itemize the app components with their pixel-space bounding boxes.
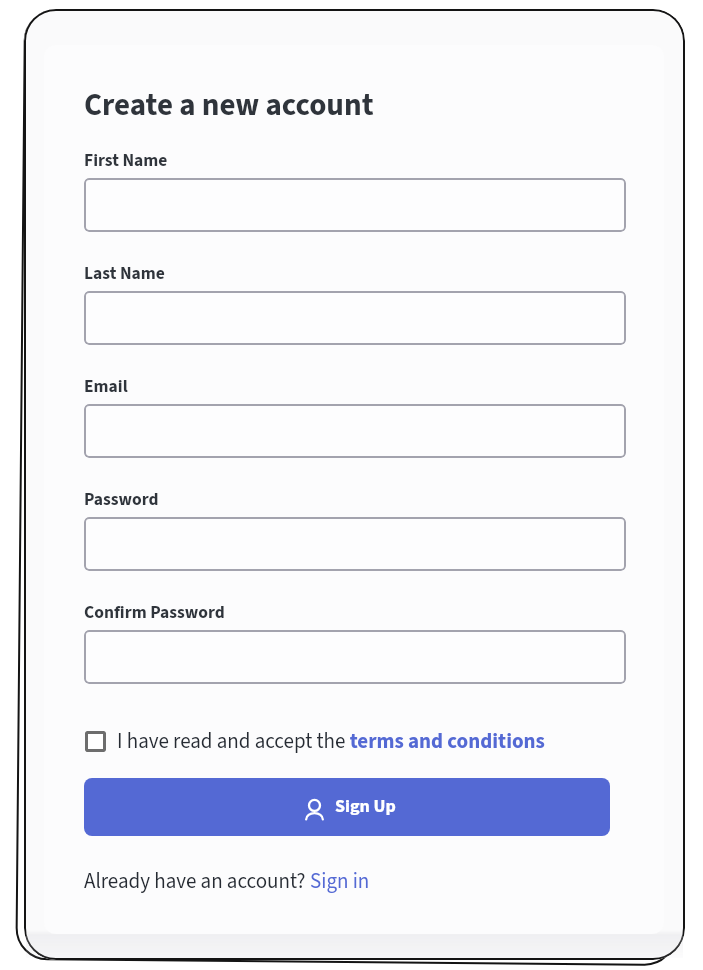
button[interactable] [84, 291, 626, 345]
staticText: First Name [84, 148, 168, 173]
staticText: I have read and accept the terms and con… [117, 726, 545, 756]
staticText: Create a new account [84, 83, 374, 127]
staticText: Password [84, 487, 159, 512]
button[interactable] [84, 630, 626, 684]
button[interactable] [84, 517, 626, 571]
button[interactable]: Sign in [310, 866, 370, 896]
staticText: Confirm Password [84, 600, 225, 625]
staticText: Sign Up [335, 794, 396, 820]
staticText: Email [84, 374, 128, 399]
staticText: Last Name [84, 261, 165, 286]
staticText: Already have an account? [84, 866, 310, 896]
button[interactable]: Sign Up [84, 778, 610, 836]
button[interactable]: I have read and accept the terms and con… [85, 726, 545, 756]
button[interactable] [84, 178, 626, 232]
button[interactable] [84, 404, 626, 458]
